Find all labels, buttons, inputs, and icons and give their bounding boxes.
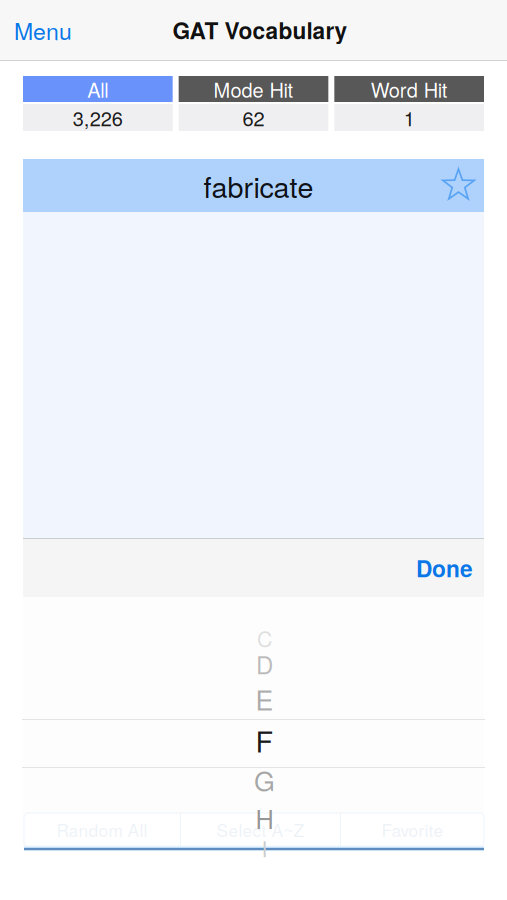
staticText: Random All [56, 817, 147, 842]
staticText: F [255, 719, 273, 761]
staticText: All [87, 75, 108, 103]
button[interactable]: Word Hit [334, 76, 484, 131]
button[interactable]: Menu [0, 1, 84, 58]
staticText: Menu [14, 13, 72, 46]
staticText: 1 [404, 103, 415, 132]
staticText: 62 [242, 103, 264, 132]
staticText: Select A~Z [216, 817, 304, 842]
staticText: Done [416, 552, 473, 584]
staticText: Favorite [381, 817, 443, 842]
button[interactable]: Favorite [441, 160, 484, 211]
staticText: fabricate [203, 165, 313, 206]
staticText: H [255, 800, 273, 836]
button[interactable]: Favorite [341, 813, 484, 846]
staticText: E [255, 680, 273, 718]
button[interactable]: Done [392, 536, 484, 600]
staticText: 3,226 [73, 103, 123, 132]
staticText: Word Hit [371, 75, 448, 103]
staticText: G [254, 761, 275, 799]
button[interactable]: Random All [24, 813, 180, 846]
staticText: I [261, 833, 267, 863]
staticText: D [256, 647, 273, 681]
button[interactable]: Select A~Z [181, 813, 340, 846]
button[interactable]: Mode Hit [179, 76, 328, 131]
staticText: GAT Vocabulary [172, 14, 347, 46]
staticText: C [257, 623, 272, 653]
staticText: Mode Hit [213, 75, 293, 103]
button[interactable]: All [23, 76, 173, 131]
